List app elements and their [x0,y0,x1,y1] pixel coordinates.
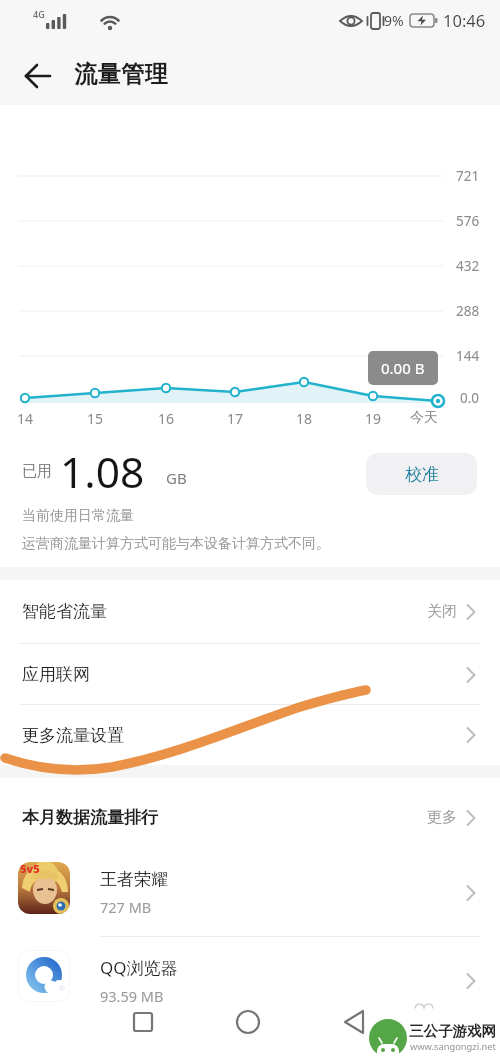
staticText: 0.0 [460,389,480,407]
staticText: www.sangongzi.net [410,1040,496,1053]
button[interactable]: 5v5 [0,849,500,936]
staticText: 93.59 MB [100,986,164,1006]
staticText: 当前使用日常流量 [22,507,134,525]
staticText: 关闭 [427,602,457,621]
button[interactable] [123,1002,163,1042]
staticText: GB [166,468,187,488]
staticText: 5v5 [20,862,40,876]
staticText: 19 [365,409,382,428]
staticText: 18 [296,409,313,428]
staticText: 9% [384,11,404,30]
staticText: 4G [33,8,45,20]
staticText: 0.00 B [381,358,425,378]
staticText: 727 MB [100,897,152,917]
staticText: 今天 [410,409,438,427]
staticText: 应用联网 [22,664,90,685]
button[interactable]: 智能省流量 [0,580,500,642]
staticText: 16 [158,409,175,428]
staticText: 17 [227,409,244,428]
button[interactable] [335,1002,375,1042]
button[interactable] [16,57,60,95]
staticText: 15 [87,409,104,428]
staticText: 1.08 [60,443,145,501]
button[interactable]: 校准 [366,453,477,495]
staticText: 智能省流量 [22,601,107,622]
staticText: 运营商流量计算方式可能与本设备计算方式不同。 [22,535,330,553]
staticText: 144 [456,347,480,365]
staticText: QQ浏览器 [100,956,178,979]
button[interactable]: 本月数据流量排行 [0,785,500,849]
staticText: 王者荣耀 [100,869,168,890]
staticText: 432 [456,257,480,275]
button[interactable] [228,1002,268,1042]
staticText: 更多 [427,808,457,827]
staticText: 288 [456,302,480,320]
staticText: 本月数据流量排行 [22,807,158,828]
staticText: 更多流量设置 [22,725,124,746]
staticText: 721 [456,167,480,185]
staticText: 三公子游戏网 [409,1022,496,1040]
button[interactable]: 应用联网 [0,644,500,705]
staticText: 14 [17,409,34,428]
staticText: 已用 [22,462,52,481]
staticText: 576 [456,212,480,230]
staticText: 校准 [405,464,439,485]
staticText: 10:46 [443,9,486,31]
button[interactable]: QQ浏览器 [0,937,500,1024]
button[interactable]: 更多流量设置 [0,705,500,765]
staticText: 流量管理 [74,60,168,89]
